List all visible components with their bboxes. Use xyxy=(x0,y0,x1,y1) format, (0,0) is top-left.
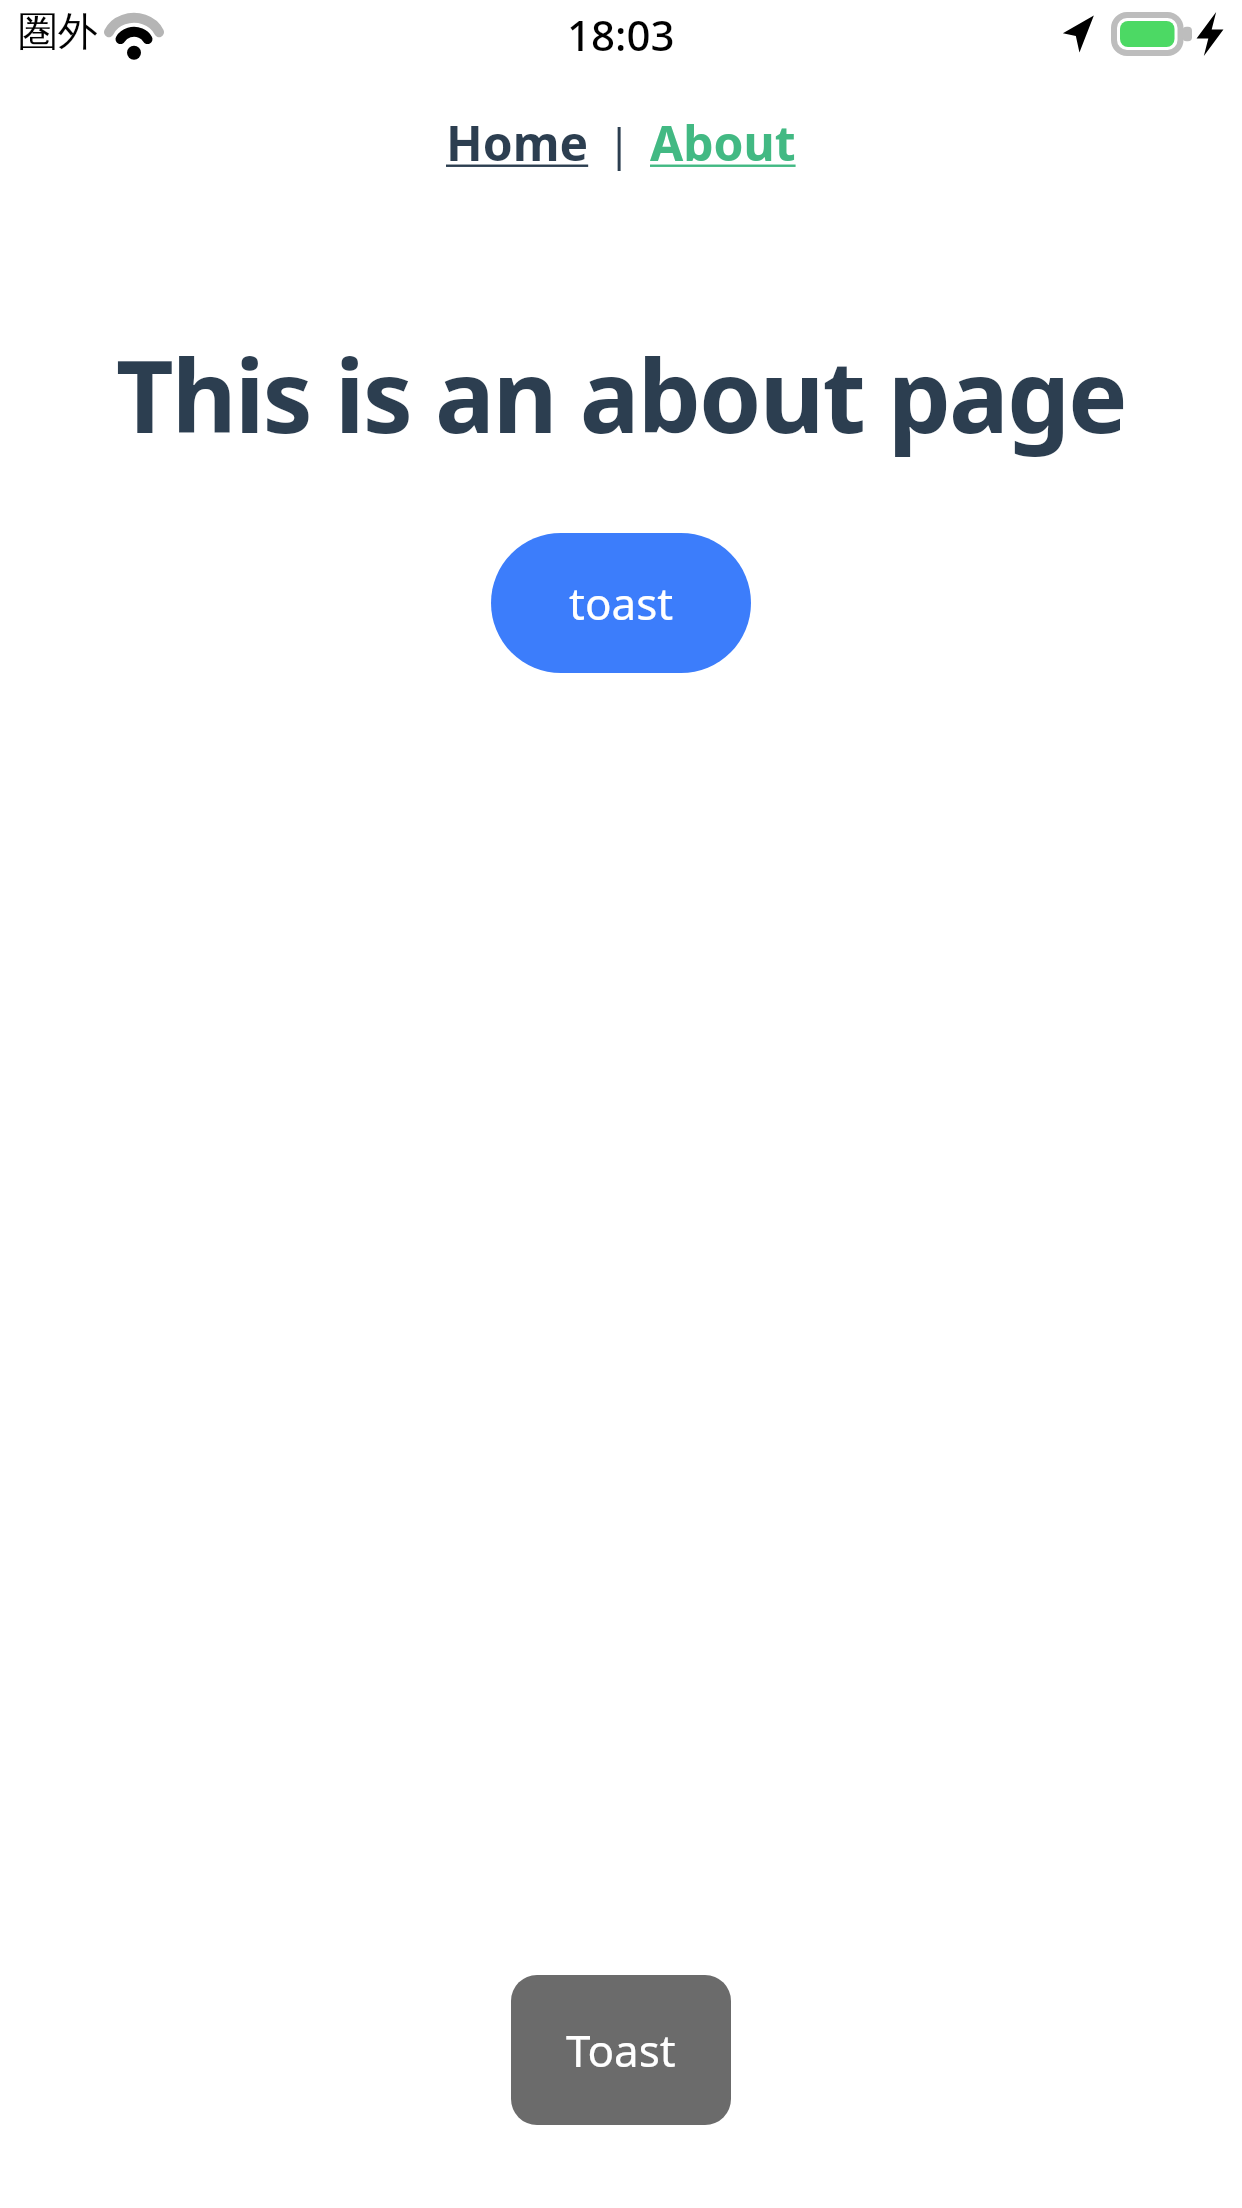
button[interactable]: toast xyxy=(491,533,751,673)
staticText: Toast xyxy=(566,2020,676,2080)
staticText: 18:03 xyxy=(567,6,675,63)
staticText: About xyxy=(650,110,796,175)
staticText: | xyxy=(607,113,632,173)
button[interactable]: Home xyxy=(444,108,591,177)
other: Toast message xyxy=(511,1975,731,2125)
staticText: This is an about page xyxy=(116,326,1126,462)
staticText: 圏外 xyxy=(18,6,98,56)
staticText: toast xyxy=(569,573,674,633)
button[interactable]: About xyxy=(648,108,798,177)
staticText: Home xyxy=(446,110,589,175)
